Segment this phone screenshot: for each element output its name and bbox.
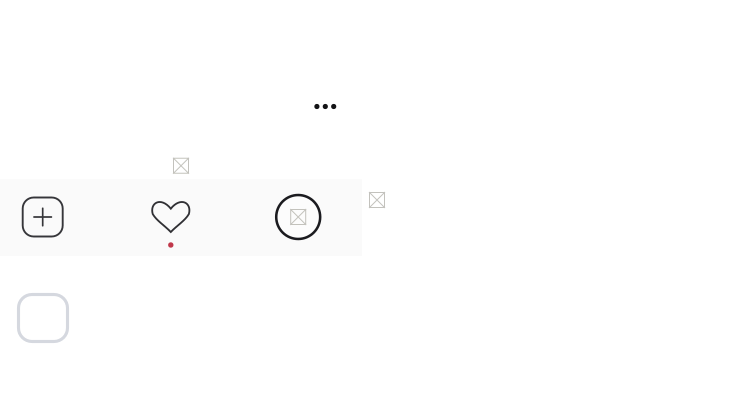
button[interactable]: Profile	[275, 193, 322, 240]
button[interactable]: New post	[21, 195, 65, 239]
image	[369, 192, 385, 208]
image	[173, 158, 189, 174]
button[interactable]: More options	[303, 89, 347, 123]
image	[290, 209, 306, 225]
button[interactable]: Activity	[149, 195, 193, 239]
button[interactable]: Home	[11, 287, 75, 349]
